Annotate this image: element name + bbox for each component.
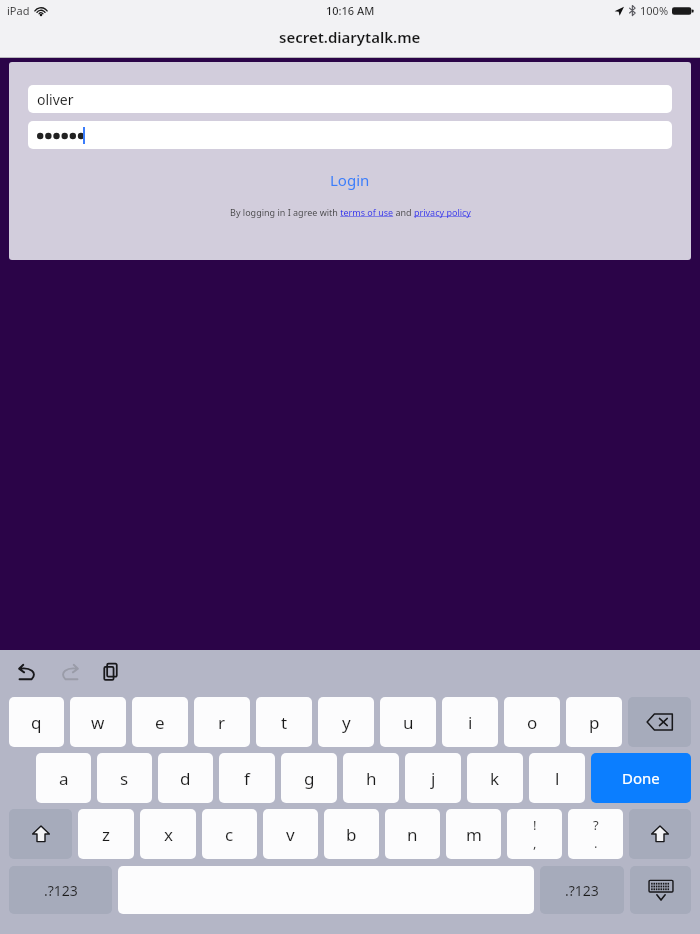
staticText: v (286, 823, 295, 846)
button[interactable]: n (385, 809, 440, 859)
staticText: oliver (37, 90, 74, 109)
button[interactable]: h (343, 753, 399, 803)
staticText: z (102, 823, 110, 846)
button[interactable]: Shift (9, 809, 72, 859)
staticText: u (403, 711, 414, 734)
staticText: w (91, 711, 105, 734)
button[interactable]: .?123 (540, 866, 624, 914)
staticText: o (527, 711, 538, 734)
staticText: j (431, 767, 436, 790)
staticText: a (59, 767, 69, 790)
button[interactable]: i (442, 697, 498, 747)
button[interactable]: .?123 (9, 866, 112, 914)
staticText: r (218, 711, 226, 734)
button[interactable]: f (219, 753, 275, 803)
button[interactable]: x (140, 809, 196, 859)
staticText: x (164, 823, 173, 846)
button[interactable]: z (78, 809, 134, 859)
button[interactable]: Hide keyboard (630, 866, 691, 914)
staticText: By logging in I agree with terms of use … (230, 206, 471, 218)
staticText: y (342, 711, 351, 734)
button[interactable]: Redo (52, 655, 86, 689)
button[interactable]: u (380, 697, 436, 747)
staticText: p (589, 711, 600, 734)
staticText: .?123 (44, 881, 78, 900)
button[interactable]: p (566, 697, 622, 747)
button[interactable]: s (97, 753, 152, 803)
button[interactable] (28, 121, 672, 149)
button[interactable]: c (202, 809, 257, 859)
staticText: ! (533, 816, 537, 834)
staticText: 100% (640, 3, 669, 18)
button[interactable]: g (281, 753, 337, 803)
button[interactable]: w (70, 697, 126, 747)
button[interactable]: m (446, 809, 501, 859)
button[interactable]: q (9, 697, 64, 747)
staticText: 10:16 AM (326, 3, 375, 18)
staticText: s (120, 767, 129, 790)
staticText: k (490, 767, 500, 790)
staticText: m (466, 823, 482, 846)
button[interactable]: ! (507, 809, 562, 859)
staticText: l (555, 767, 560, 790)
button[interactable]: Shift (629, 809, 691, 859)
button[interactable]: d (158, 753, 213, 803)
staticText: i (468, 711, 473, 734)
staticText: , (533, 834, 537, 852)
staticText: d (180, 767, 191, 790)
button[interactable]: r (194, 697, 250, 747)
button[interactable]: Paste (94, 655, 128, 689)
button[interactable]: y (318, 697, 374, 747)
button[interactable]: Backspace (628, 697, 691, 747)
button[interactable]: a (36, 753, 91, 803)
staticText: b (346, 823, 357, 846)
staticText: secret.diarytalk.me (279, 27, 421, 47)
button[interactable]: Login (320, 168, 380, 192)
button[interactable]: b (324, 809, 379, 859)
button[interactable]: l (529, 753, 585, 803)
button[interactable]: t (256, 697, 312, 747)
staticText: q (31, 711, 42, 734)
button[interactable]: ? (568, 809, 623, 859)
staticText: Done (622, 768, 660, 788)
staticText: t (281, 711, 288, 734)
button[interactable]: e (132, 697, 188, 747)
staticText: ? (593, 816, 599, 834)
button[interactable]: o (504, 697, 560, 747)
staticText: n (407, 823, 418, 846)
staticText: c (225, 823, 234, 846)
staticText: Login (330, 170, 370, 190)
button[interactable]: Undo (10, 655, 44, 689)
staticText: h (366, 767, 377, 790)
staticText: .?123 (565, 881, 599, 900)
staticText: g (304, 767, 315, 790)
staticText: e (155, 711, 165, 734)
button[interactable]: k (467, 753, 523, 803)
staticText: . (594, 834, 598, 852)
button[interactable]: Done (591, 753, 691, 803)
staticText: f (244, 767, 250, 790)
button[interactable]: v (263, 809, 318, 859)
button[interactable]: j (405, 753, 461, 803)
staticText: iPad (7, 3, 30, 18)
button[interactable]: oliver (28, 85, 672, 113)
